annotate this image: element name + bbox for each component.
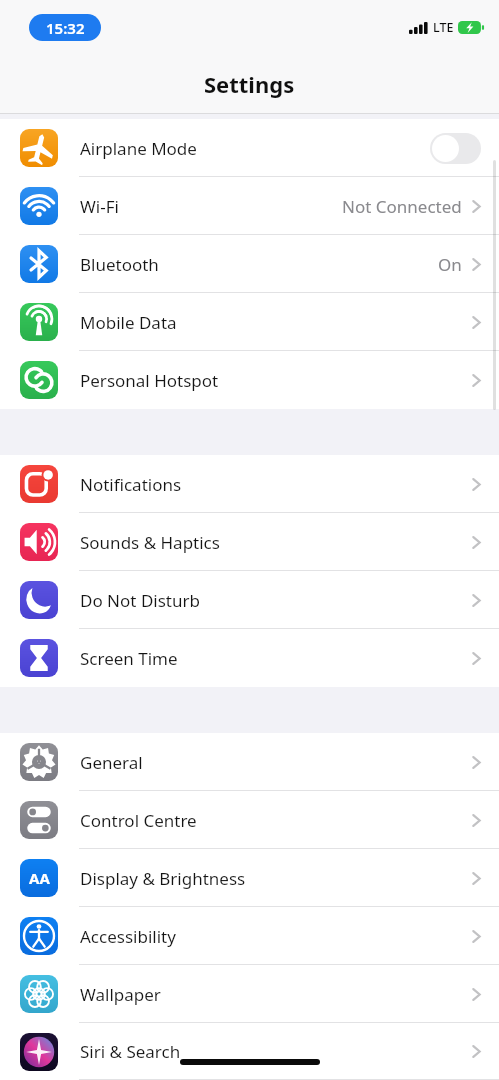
staticText: Personal Hotspot [80, 369, 472, 392]
button[interactable]: General [0, 733, 499, 791]
staticText: Do Not Disturb [80, 589, 472, 612]
button[interactable]: Personal Hotspot [0, 351, 499, 409]
button[interactable]: Screen Time [0, 629, 499, 687]
button[interactable]: AA [0, 849, 499, 907]
button[interactable]: Wi-Fi [0, 177, 499, 235]
staticText: Wi-Fi [80, 195, 342, 218]
staticText: Mobile Data [80, 311, 472, 334]
staticText: AA [29, 868, 50, 888]
staticText: Sounds & Haptics [80, 531, 472, 554]
staticText: Display & Brightness [80, 867, 472, 890]
staticText: Screen Time [80, 647, 472, 670]
button[interactable]: Do Not Disturb [0, 571, 499, 629]
staticText: Airplane Mode [80, 137, 430, 160]
staticText: Bluetooth [80, 253, 438, 276]
staticText: Wallpaper [80, 983, 472, 1006]
staticText: Notifications [80, 473, 472, 496]
button[interactable]: Mobile Data [0, 293, 499, 351]
staticText: Accessibility [80, 925, 472, 948]
button[interactable]: Airplane Mode toggle [430, 133, 481, 164]
button[interactable]: Sounds & Haptics [0, 513, 499, 571]
button[interactable]: Notifications [0, 455, 499, 513]
staticText: On [438, 253, 462, 276]
staticText: Not Connected [342, 195, 462, 218]
staticText: Settings [204, 69, 295, 99]
staticText: General [80, 751, 472, 774]
button[interactable]: Wallpaper [0, 965, 499, 1023]
staticText: 15:32 [46, 18, 85, 38]
staticText: LTE [433, 19, 454, 36]
button[interactable]: Control Centre [0, 791, 499, 849]
button[interactable]: Siri & Search [0, 1023, 499, 1080]
button[interactable]: Airplane Mode [0, 119, 499, 177]
staticText: Control Centre [80, 809, 472, 832]
staticText: Siri & Search [80, 1040, 472, 1063]
button[interactable]: Accessibility [0, 907, 499, 965]
button[interactable]: Bluetooth [0, 235, 499, 293]
